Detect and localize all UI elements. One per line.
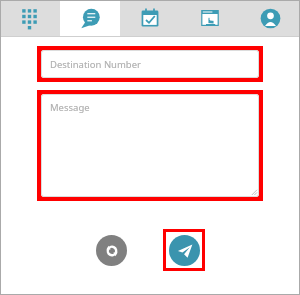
button[interactable]: Send bbox=[169, 235, 200, 266]
button[interactable]: Dialpad bbox=[0, 0, 60, 36]
button[interactable]: Messages bbox=[60, 0, 120, 36]
button[interactable]: Refresh bbox=[96, 235, 127, 266]
staticText: Message bbox=[50, 101, 90, 114]
button[interactable]: Calendar bbox=[120, 0, 180, 36]
button[interactable]: Profile bbox=[240, 0, 300, 36]
button[interactable]: Message bbox=[41, 94, 259, 197]
staticText: Destination Number bbox=[50, 58, 141, 71]
button[interactable]: Destination Number bbox=[41, 50, 259, 78]
button[interactable]: Apps bbox=[180, 0, 240, 36]
